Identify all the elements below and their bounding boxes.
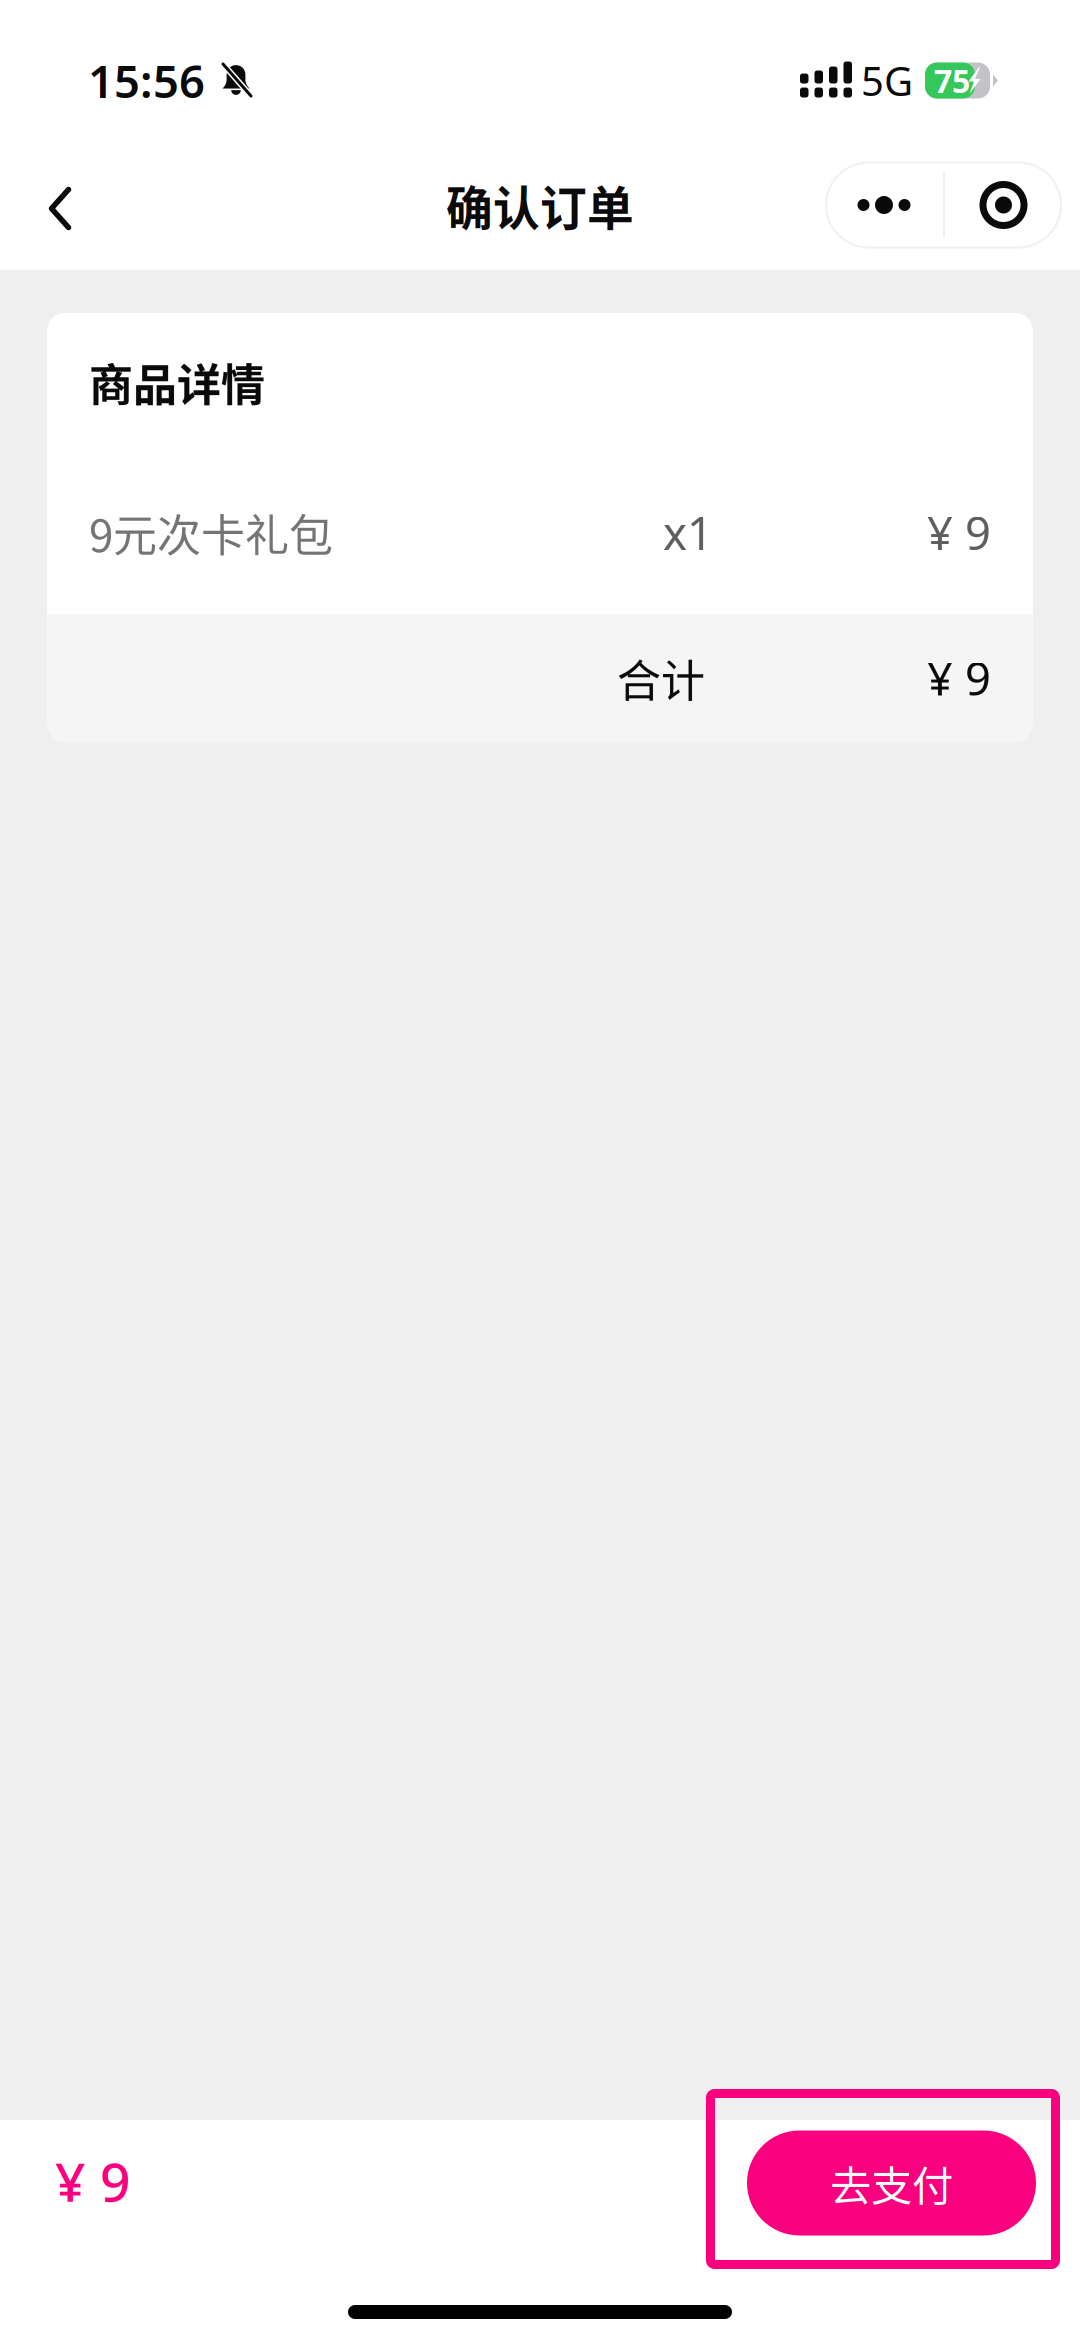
button[interactable]: More	[825, 161, 943, 248]
staticText: 去支付	[830, 2153, 953, 2213]
staticText: 15:56	[88, 50, 205, 111]
staticText: 9元次卡礼包	[89, 501, 333, 564]
staticText: 5G	[861, 54, 913, 107]
button[interactable]: Close mini program	[945, 161, 1062, 248]
button[interactable]: 去支付	[747, 2130, 1036, 2235]
staticText: x1	[663, 502, 713, 563]
staticText: 75	[934, 59, 970, 102]
staticText: ¥ 9	[927, 648, 991, 708]
staticText: 合计	[617, 646, 705, 710]
staticText: ¥ 9	[927, 502, 991, 563]
button[interactable]: Back	[14, 155, 106, 255]
staticText: 商品详情	[89, 350, 265, 414]
staticText: ¥ 9	[55, 2146, 131, 2216]
staticText: 确认订单	[446, 171, 634, 239]
